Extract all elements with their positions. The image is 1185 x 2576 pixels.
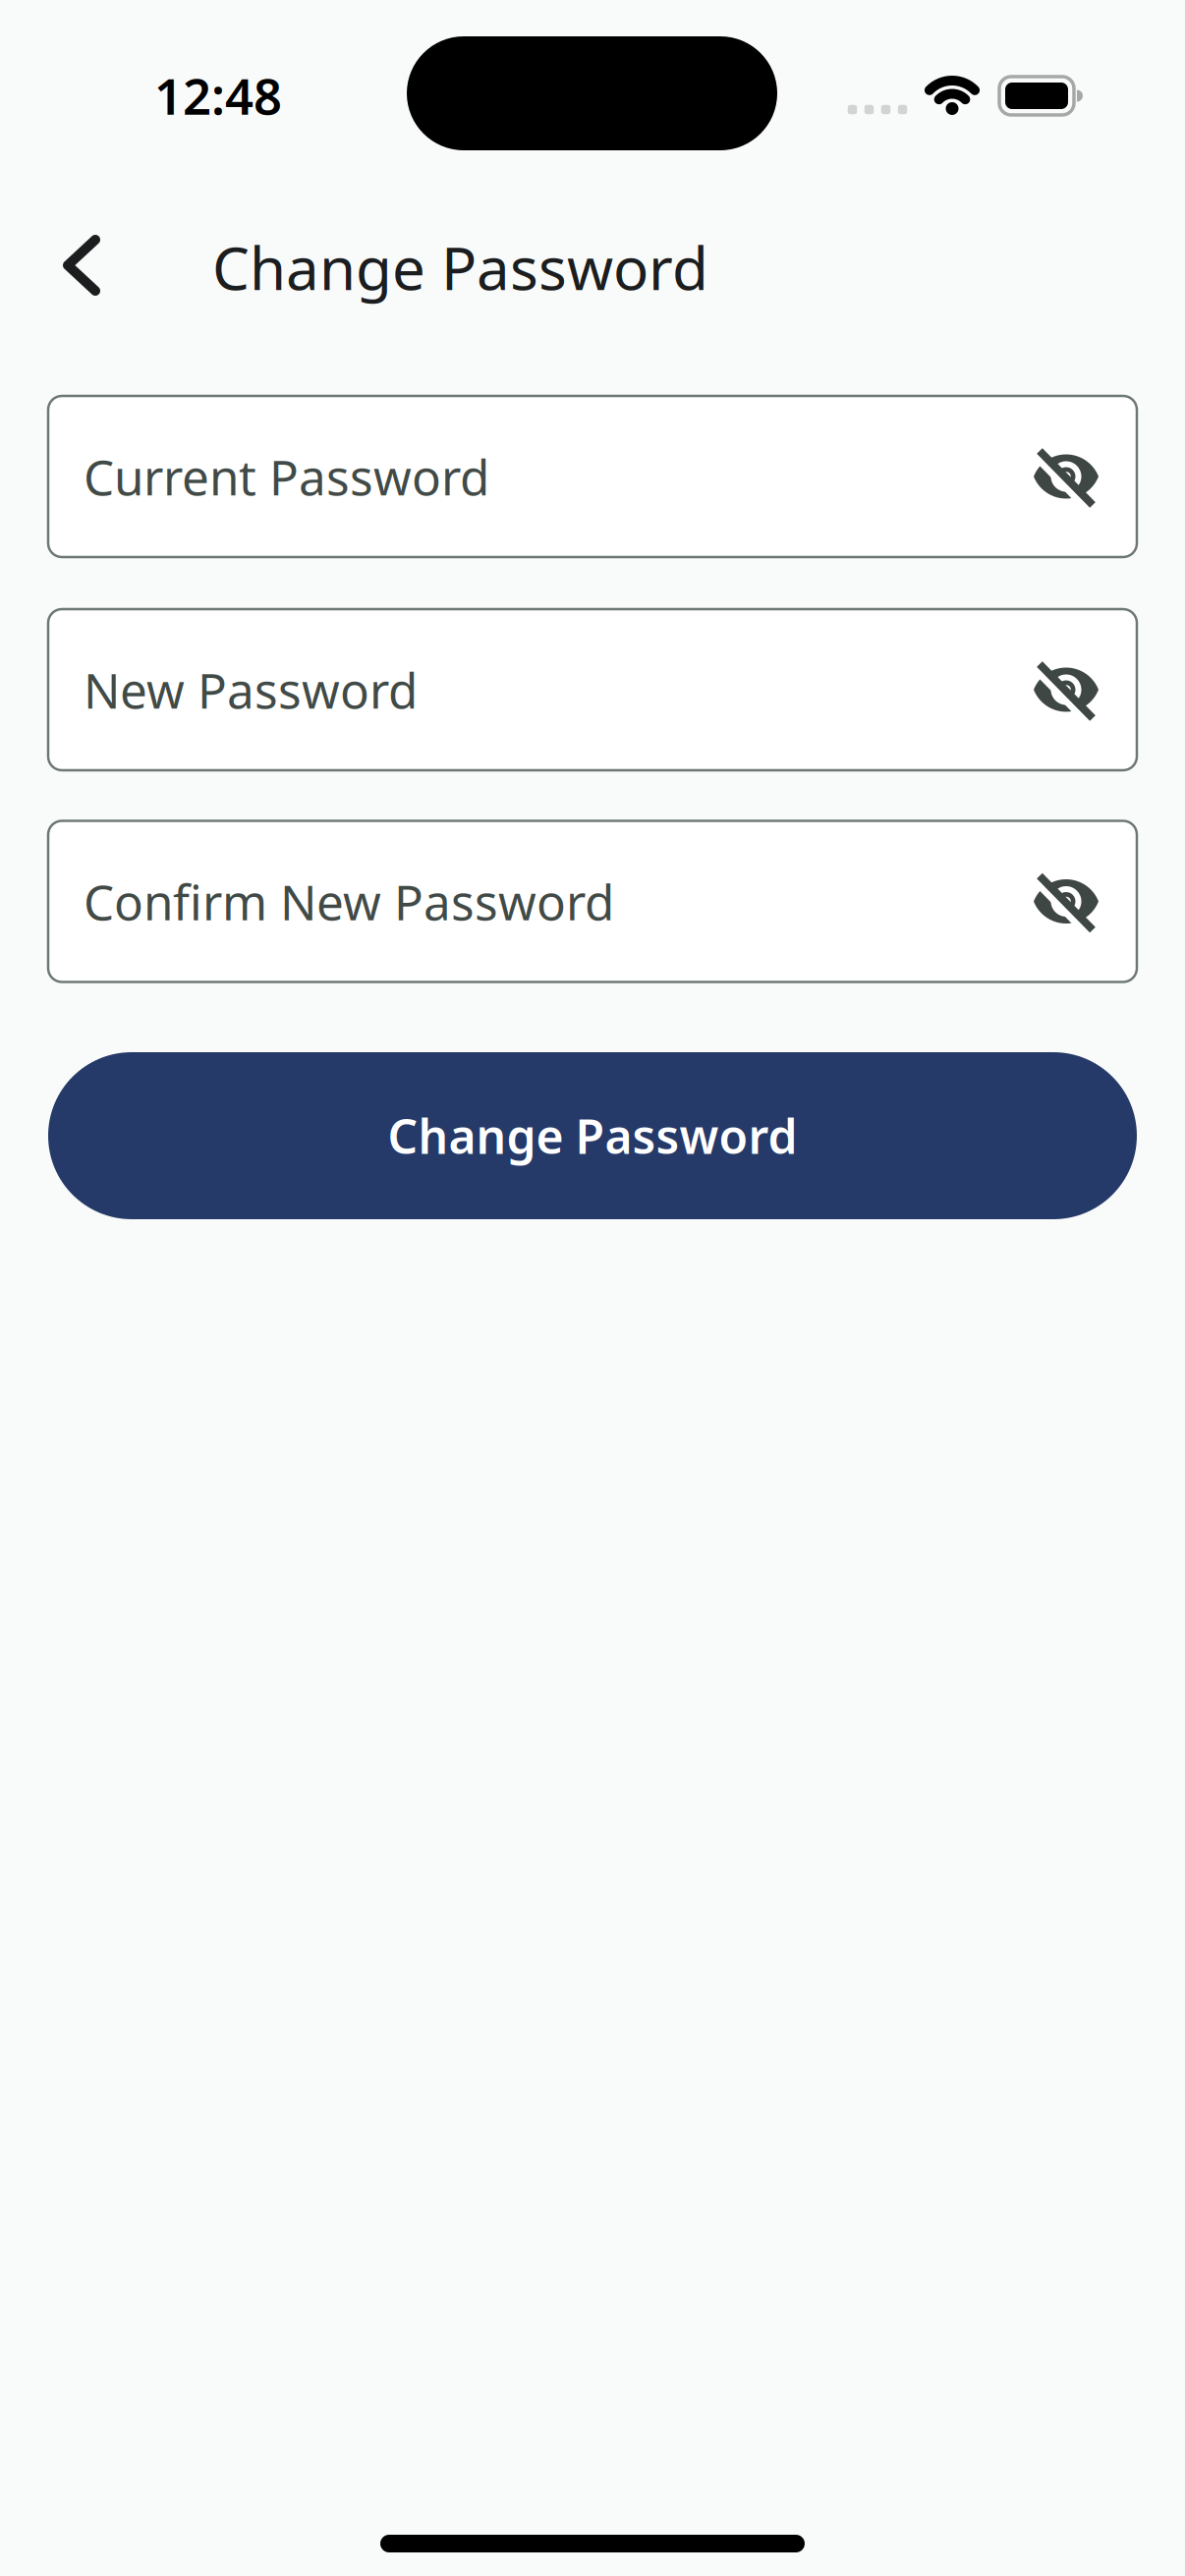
button[interactable]: Change Password — [48, 1052, 1137, 1219]
staticText: 12:48 — [154, 62, 282, 128]
button[interactable]: Show password — [1032, 442, 1100, 511]
staticText: New Password — [84, 657, 418, 722]
staticText: Change Password — [212, 228, 708, 306]
staticText: Change Password — [388, 1104, 797, 1167]
button[interactable]: Back — [62, 231, 103, 300]
button[interactable]: Show password — [1032, 655, 1100, 724]
staticText: Current Password — [84, 444, 489, 509]
staticText: Confirm New Password — [84, 869, 614, 934]
button[interactable]: Show password — [1032, 867, 1100, 936]
